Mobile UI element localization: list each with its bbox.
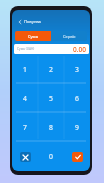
staticText: 6: [75, 94, 79, 103]
staticText: Сервіс: [63, 34, 76, 39]
staticText: 1: [23, 65, 27, 74]
staticText: Покупка: [24, 19, 41, 25]
button[interactable]: Сума: [15, 31, 51, 41]
button[interactable]: 7: [12, 113, 38, 142]
staticText: 7: [23, 123, 27, 132]
button[interactable]: Сервіс: [51, 31, 87, 41]
button[interactable]: 4: [12, 84, 38, 113]
staticText: Сума: [28, 34, 38, 39]
staticText: 0.00: [73, 45, 86, 54]
staticText: Сума (UAH): [17, 47, 35, 51]
staticText: 5: [49, 94, 53, 103]
staticText: 8: [49, 123, 53, 132]
button[interactable]: 0: [38, 142, 64, 171]
staticText: 0: [49, 152, 53, 161]
button[interactable]: Back: [16, 18, 24, 26]
button[interactable]: 5: [38, 84, 64, 113]
button[interactable]: Confirm: [64, 142, 90, 171]
staticText: 3: [75, 65, 79, 74]
staticText: 9: [75, 123, 79, 132]
button[interactable]: 6: [64, 84, 90, 113]
button[interactable]: Сума (UAH): [14, 44, 89, 54]
button[interactable]: 2: [38, 55, 64, 84]
button[interactable]: 3: [64, 55, 90, 84]
staticText: 2: [49, 65, 53, 74]
button[interactable]: 8: [38, 113, 64, 142]
button[interactable]: Delete: [12, 142, 38, 171]
staticText: 4: [23, 94, 27, 103]
button[interactable]: 9: [64, 113, 90, 142]
button[interactable]: 1: [12, 55, 38, 84]
